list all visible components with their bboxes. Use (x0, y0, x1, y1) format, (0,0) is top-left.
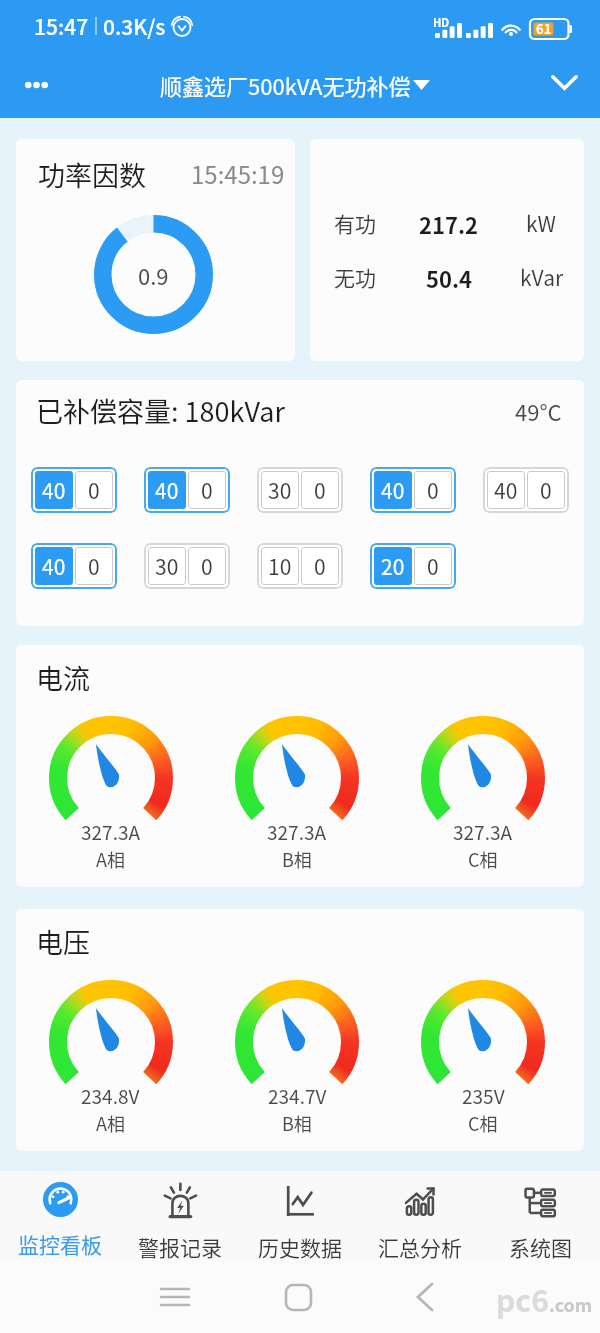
staticText: kVar (520, 262, 564, 292)
button[interactable]: 40 (487, 471, 565, 509)
staticText: 10 (268, 551, 292, 581)
button[interactable]: 系统图 (480, 1171, 600, 1259)
staticText: 40 (155, 475, 179, 505)
button[interactable]: 40 (35, 471, 113, 509)
staticText: 40 (381, 475, 405, 505)
staticText: 235V (462, 1082, 505, 1110)
staticText: 40 (494, 475, 518, 505)
staticText: 30 (155, 551, 179, 581)
staticText: 0 (314, 551, 326, 581)
staticText: 电流 (36, 658, 90, 697)
staticText: 234.7V (268, 1082, 327, 1110)
button[interactable]: 警报记录 (120, 1171, 240, 1259)
staticText: A相 (96, 846, 125, 872)
staticText: .com (549, 1291, 593, 1317)
staticText: 327.3A (453, 818, 513, 846)
staticText: 0 (314, 475, 326, 505)
staticText: 327.3A (267, 818, 327, 846)
staticText: A相 (96, 1110, 125, 1136)
staticText: 15:45:19 (191, 156, 285, 191)
button[interactable]: Expand (535, 56, 593, 114)
staticText: 15:47 (34, 11, 89, 41)
staticText: 功率因数 (38, 155, 146, 194)
staticText: kW (526, 208, 557, 238)
staticText: 顺鑫选厂500kVA无功补偿 (160, 69, 411, 101)
staticText: C相 (468, 1110, 498, 1136)
button[interactable]: Recent apps (145, 1267, 205, 1327)
staticText: 40 (42, 475, 66, 505)
staticText: 系统图 (509, 1232, 572, 1259)
button[interactable]: More options (7, 56, 65, 114)
staticText: 61 (536, 19, 552, 38)
button[interactable]: 30 (261, 471, 339, 509)
staticText: 电压 (36, 922, 90, 961)
staticText: 无功 (334, 262, 376, 292)
staticText: 警报记录 (138, 1232, 222, 1259)
button[interactable]: 40 (148, 471, 226, 509)
staticText: 0 (540, 475, 552, 505)
staticText: 0.9 (138, 259, 169, 291)
staticText: 监控看板 (18, 1229, 102, 1259)
staticText: 历史数据 (258, 1232, 342, 1259)
staticText: 0 (88, 551, 100, 581)
button[interactable]: 监控看板 (0, 1171, 120, 1259)
staticText: 汇总分析 (378, 1232, 462, 1259)
staticText: 40 (42, 551, 66, 581)
staticText: 327.3A (81, 818, 141, 846)
button[interactable]: 汇总分析 (360, 1171, 480, 1259)
staticText: 20 (381, 551, 405, 581)
button[interactable]: 功率因数 (16, 139, 295, 361)
staticText: B相 (282, 846, 312, 872)
staticText: 0 (427, 551, 439, 581)
staticText: 0 (88, 475, 100, 505)
button[interactable]: 40 (35, 547, 113, 585)
staticText: 30 (268, 475, 292, 505)
staticText: 0 (201, 551, 213, 581)
staticText: pc6 (496, 1277, 549, 1320)
staticText: 0 (201, 475, 213, 505)
staticText: 0.3K/s (103, 11, 166, 41)
staticText: 234.8V (81, 1082, 140, 1110)
button[interactable]: Back (395, 1267, 455, 1327)
staticText: B相 (282, 1110, 312, 1136)
staticText: C相 (468, 846, 498, 872)
button[interactable]: 20 (374, 547, 452, 585)
button[interactable]: 历史数据 (240, 1171, 360, 1259)
staticText: 有功 (334, 208, 376, 238)
button[interactable]: 10 (261, 547, 339, 585)
button[interactable]: Home (268, 1267, 328, 1327)
staticText: 217.2 (419, 208, 479, 238)
button[interactable]: 有功 (310, 139, 584, 361)
button[interactable]: 30 (148, 547, 226, 585)
staticText: HD (433, 14, 450, 30)
staticText: 0 (427, 475, 439, 505)
staticText: 49°C (515, 395, 562, 427)
staticText: 已补偿容量: 180kVar (36, 391, 285, 430)
button[interactable]: 40 (374, 471, 452, 509)
staticText: 50.4 (426, 262, 473, 292)
